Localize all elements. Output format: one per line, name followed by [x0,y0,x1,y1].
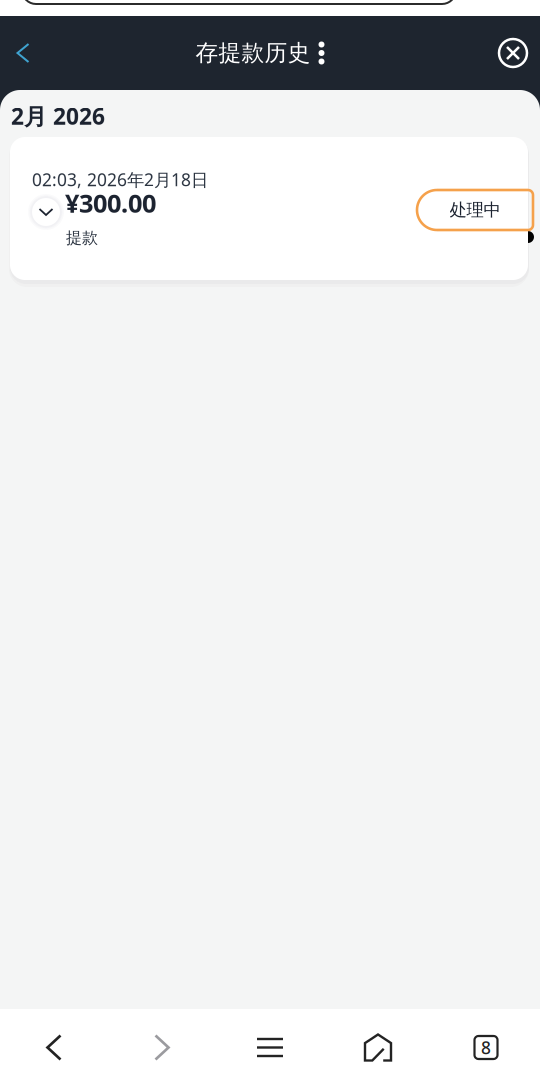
staticText: 处理中 [449,199,500,221]
staticText: 2月 2026 [11,101,105,131]
button[interactable]: Share [324,1009,432,1086]
button[interactable]: 处理中 [417,190,533,230]
button[interactable]: Forward [108,1009,216,1086]
staticText: 02:03, 2026年2月18日 [32,168,208,191]
button[interactable]: Back [0,16,46,90]
button[interactable]: Back [0,1009,108,1086]
button[interactable]: 提款 ¥300.00, 02:03, 2026年2月18日, 处理中 [10,137,528,280]
staticText: 提款 [66,228,98,248]
button[interactable]: Tabs [432,1009,540,1086]
staticText: 8 [481,1036,491,1059]
button[interactable]: Expand transaction [28,194,64,230]
staticText: ¥300.00 [65,186,156,220]
button[interactable]: Bookmarks [216,1009,324,1086]
staticText: 存提款历史 [195,39,310,67]
button[interactable]: 存提款历史 [189,16,330,90]
button[interactable]: Close [486,16,540,90]
